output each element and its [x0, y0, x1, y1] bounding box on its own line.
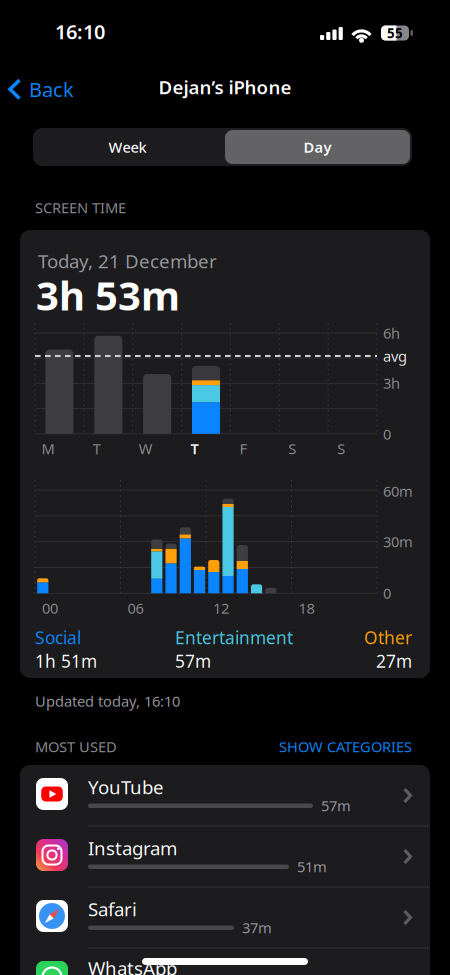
staticText: Day	[303, 137, 331, 157]
staticText: 3h	[383, 373, 400, 393]
staticText: Instagram	[88, 836, 177, 860]
button[interactable]: YouTube	[20, 765, 430, 826]
staticText: MOST USED	[35, 737, 117, 756]
staticText: M	[41, 439, 54, 458]
staticText: Safari	[88, 897, 137, 921]
staticText: 27m	[376, 649, 412, 672]
staticText: Dejan’s iPhone	[158, 75, 291, 99]
staticText: 3h 53m	[36, 268, 180, 321]
button[interactable]: Back	[8, 76, 74, 103]
staticText: 0	[383, 583, 391, 603]
staticText: avg	[383, 346, 407, 366]
staticText: F	[239, 439, 247, 458]
staticText: 18	[298, 598, 314, 618]
button[interactable]: WhatsApp	[88, 955, 288, 975]
staticText: 16:10	[55, 18, 105, 45]
staticText: Updated today, 16:10	[35, 691, 180, 711]
staticText: 30m	[383, 532, 413, 551]
staticText: W	[139, 439, 153, 458]
staticText: YouTube	[88, 775, 164, 799]
staticText: 51m	[297, 857, 327, 876]
staticText: S	[288, 439, 296, 458]
staticText: 60m	[383, 481, 413, 501]
staticText: Social	[35, 626, 81, 649]
staticText: 0	[383, 424, 391, 444]
staticText: 37m	[242, 918, 272, 937]
staticText: 00	[42, 598, 58, 618]
button[interactable]: Week	[33, 128, 222, 166]
staticText: T	[93, 439, 101, 458]
staticText: 57m	[175, 649, 211, 672]
button[interactable]: Day	[225, 130, 410, 164]
button[interactable]: Safari	[20, 887, 430, 948]
staticText: Entertainment	[175, 626, 293, 649]
staticText: T	[191, 439, 199, 458]
staticText: 1h 51m	[35, 649, 97, 672]
staticText: SHOW CATEGORIES	[279, 737, 412, 756]
staticText: Back	[29, 76, 74, 103]
button[interactable]: SHOW CATEGORIES	[212, 736, 412, 756]
staticText: Today, 21 December	[38, 249, 217, 273]
staticText: 12	[213, 598, 229, 618]
staticText: SCREEN TIME	[35, 198, 126, 217]
staticText: 55	[387, 24, 403, 42]
staticText: 57m	[321, 796, 351, 815]
staticText: S	[337, 439, 345, 458]
staticText: 06	[127, 598, 143, 618]
button[interactable]: Instagram	[20, 826, 430, 887]
staticText: 6h	[383, 323, 400, 343]
staticText: Other	[364, 626, 412, 649]
staticText: WhatsApp	[88, 956, 177, 975]
staticText: Week	[108, 137, 146, 157]
